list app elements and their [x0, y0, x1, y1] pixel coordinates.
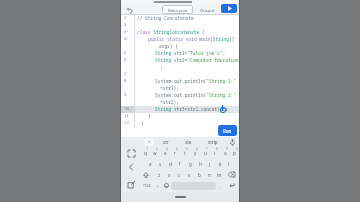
button[interactable]: z [154, 170, 164, 179]
staticText: 8 [216, 147, 218, 150]
staticText: // String Concatenate [137, 15, 194, 21]
staticText: String str1="Tutor joe's"; [155, 50, 226, 56]
staticText: v [188, 172, 191, 178]
button[interactable]: e [160, 148, 170, 158]
staticText: z [158, 172, 161, 178]
staticText: 9 [226, 147, 228, 150]
staticText: +str2); [160, 99, 179, 105]
staticText: 7 [206, 147, 208, 150]
button[interactable]: x [164, 170, 174, 179]
staticText: 2 [124, 22, 127, 27]
staticText: g [189, 161, 192, 167]
button[interactable]: str [157, 138, 175, 146]
button[interactable]: g [185, 159, 195, 169]
button[interactable]: w [150, 148, 160, 158]
button[interactable]: v [184, 170, 194, 179]
staticText: Run [223, 128, 232, 134]
button[interactable]: h [195, 159, 205, 169]
staticText: +str1); [160, 85, 179, 91]
button[interactable]: n [204, 170, 214, 179]
staticText: p [233, 150, 236, 156]
staticText: String str3=str1.concat(str [155, 106, 228, 112]
button[interactable]: > [144, 138, 154, 146]
staticText: . [220, 183, 222, 189]
staticText: h [199, 161, 202, 167]
staticText: c [178, 172, 181, 178]
button[interactable] [127, 8, 133, 14]
button[interactable]: s [155, 159, 165, 169]
staticText: 3▾ [124, 29, 129, 34]
button[interactable]: m [214, 170, 224, 179]
staticText: str [163, 139, 169, 145]
button[interactable]: l [225, 159, 233, 169]
button[interactable]: r [170, 148, 180, 158]
button[interactable]: , [155, 180, 161, 189]
button[interactable]: a [145, 159, 155, 169]
staticText: 11 [124, 113, 129, 118]
staticText: e [164, 150, 167, 156]
staticText: strip [208, 139, 218, 145]
staticText: l [228, 161, 230, 167]
staticText: s [159, 161, 162, 167]
button[interactable]: k [215, 159, 225, 169]
button[interactable]: t [180, 148, 190, 158]
button[interactable]: i [210, 148, 220, 158]
button[interactable]: b [194, 170, 204, 179]
button[interactable]: Output [196, 5, 218, 14]
staticText: w [153, 150, 157, 156]
staticText: 4 [176, 147, 178, 150]
button[interactable]: j [205, 159, 215, 169]
staticText: System.out.println("String 2:" [155, 92, 236, 98]
button[interactable]: d [165, 159, 175, 169]
button[interactable]: strip [203, 138, 223, 146]
staticText: i [214, 150, 216, 156]
staticText: 9 [124, 92, 127, 97]
staticText: String str2="Computer Education" [155, 57, 242, 63]
staticText: 1 [147, 147, 149, 150]
staticText: o [224, 150, 227, 156]
staticText: j [209, 161, 211, 167]
button[interactable]: y [190, 148, 200, 158]
staticText: } [141, 120, 144, 126]
button[interactable] [128, 150, 135, 157]
staticText: 5 [186, 147, 188, 150]
button[interactable] [143, 172, 149, 178]
staticText: t [184, 150, 186, 156]
button[interactable]: u [200, 148, 210, 158]
staticText: m [217, 172, 222, 178]
staticText: class StringConcatenate { [137, 29, 205, 35]
staticText: b [198, 172, 201, 178]
staticText: q [144, 150, 147, 156]
staticText: d [169, 161, 172, 167]
staticText: 6 [196, 147, 198, 150]
button[interactable]: p [230, 148, 238, 158]
staticText: ?123 [143, 183, 151, 188]
staticText: 7 [124, 71, 127, 76]
staticText: } [148, 113, 151, 119]
button[interactable] [228, 172, 235, 177]
button[interactable] [164, 183, 169, 188]
button[interactable]: ?123 [140, 181, 154, 190]
button[interactable] [129, 164, 133, 170]
button[interactable] [221, 4, 237, 13]
staticText: 2 [156, 147, 158, 150]
staticText: 1 [124, 15, 127, 20]
button[interactable] [230, 139, 235, 146]
button[interactable]: Run [218, 125, 237, 136]
button[interactable]: ste [179, 138, 197, 146]
staticText: 10 [124, 106, 129, 111]
button[interactable] [128, 181, 135, 188]
button[interactable]: q [140, 148, 150, 158]
staticText: x [168, 172, 171, 178]
button[interactable]: Main.java [162, 5, 193, 14]
button[interactable]: o [220, 148, 230, 158]
button[interactable]: c [174, 170, 184, 179]
button[interactable] [229, 183, 235, 188]
staticText: u [204, 150, 207, 156]
button[interactable]: . [218, 181, 224, 190]
button[interactable]: f [175, 159, 185, 169]
staticText: f [179, 161, 181, 167]
staticText: System.out.println("String 1:" [155, 78, 236, 84]
